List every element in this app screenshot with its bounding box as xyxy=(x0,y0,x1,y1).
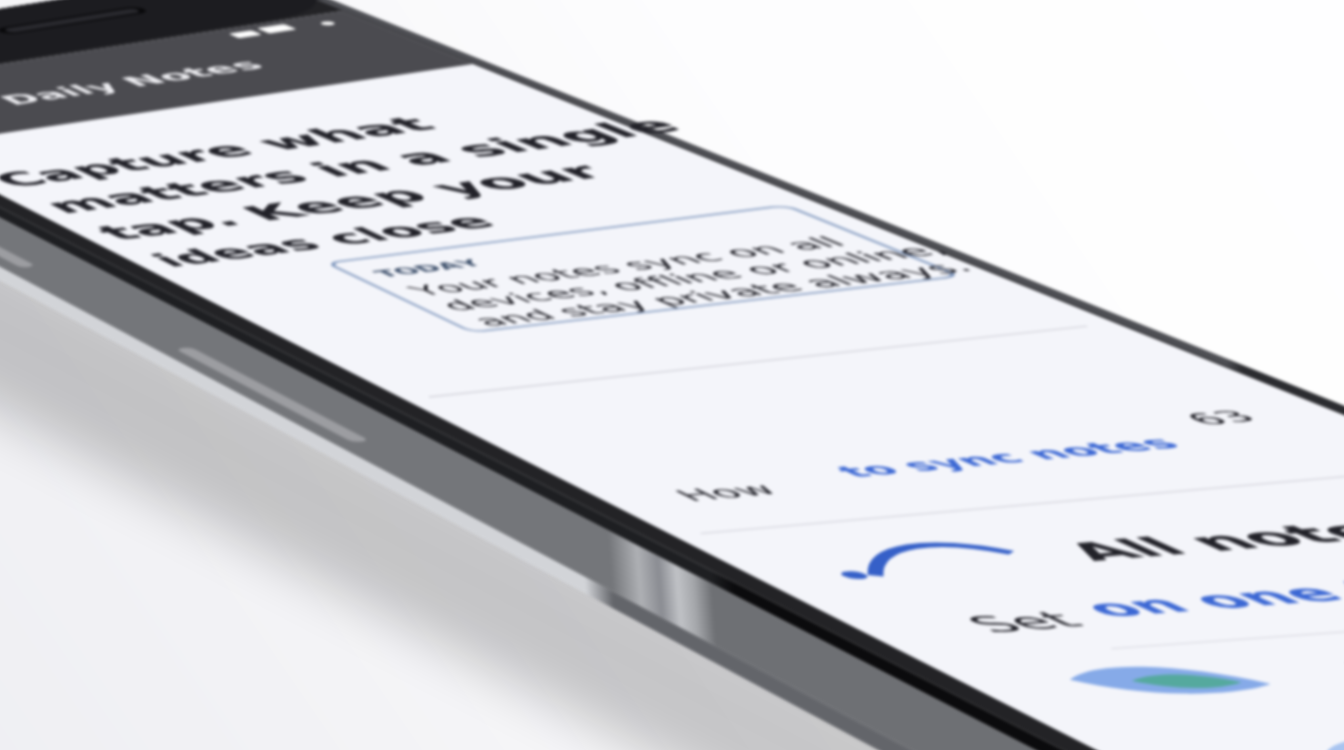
button[interactable]: Phone displaying app screen xyxy=(0,0,1344,750)
